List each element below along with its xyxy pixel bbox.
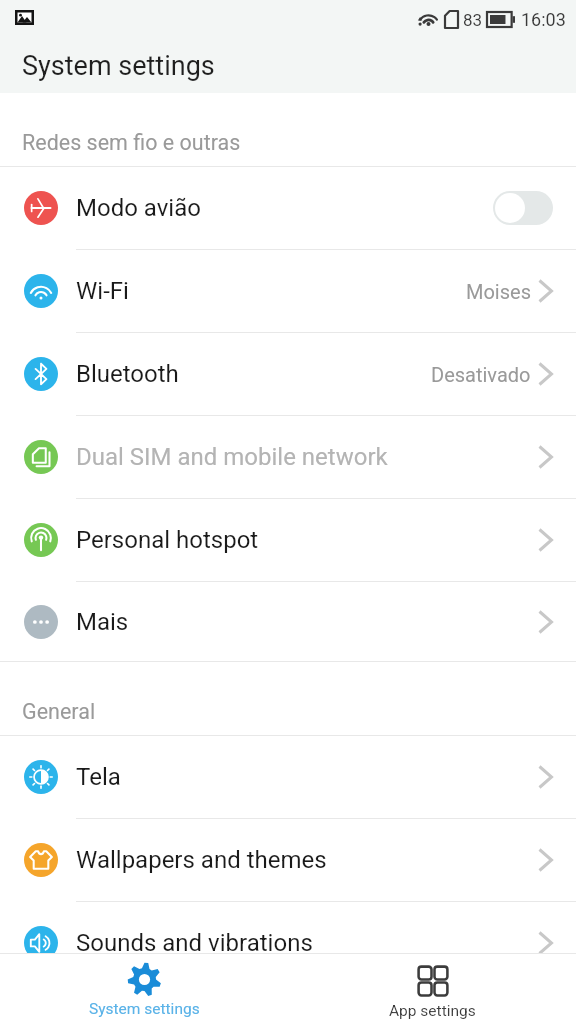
staticText: App settings (389, 1002, 476, 1020)
button[interactable]: Modo avião (0, 167, 576, 249)
staticText: Wallpapers and themes (76, 846, 327, 874)
button[interactable]: Airplane mode toggle (493, 191, 553, 225)
staticText: Modo avião (76, 194, 201, 222)
button[interactable]: Personal hotspot (0, 499, 576, 581)
staticText: 16:03 (521, 9, 566, 30)
button[interactable]: Sounds and vibrations (0, 902, 576, 953)
staticText: Wi-Fi (76, 277, 129, 305)
staticText: Bluetooth (76, 360, 179, 388)
staticText: 83 (463, 10, 483, 30)
staticText: General (22, 699, 96, 724)
button[interactable]: App settings (288, 954, 576, 1024)
button[interactable]: Dual SIM and mobile network (0, 416, 576, 498)
staticText: Personal hotspot (76, 526, 259, 554)
staticText: Redes sem fio e outras (22, 130, 241, 155)
button[interactable]: Wi-Fi (0, 250, 576, 332)
staticText: Desativado (431, 363, 531, 386)
staticText: Dual SIM and mobile network (76, 443, 388, 471)
button[interactable]: Tela (0, 736, 576, 818)
button[interactable]: System settings (0, 954, 288, 1024)
staticText: Sounds and vibrations (76, 929, 313, 953)
staticText: Moises (466, 280, 531, 303)
staticText: Tela (76, 763, 121, 791)
staticText: System settings (22, 50, 215, 82)
button[interactable]: Mais (0, 582, 576, 661)
button[interactable]: Wallpapers and themes (0, 819, 576, 901)
staticText: System settings (89, 1000, 200, 1018)
staticText: Mais (76, 608, 129, 636)
button[interactable]: Bluetooth (0, 333, 576, 415)
